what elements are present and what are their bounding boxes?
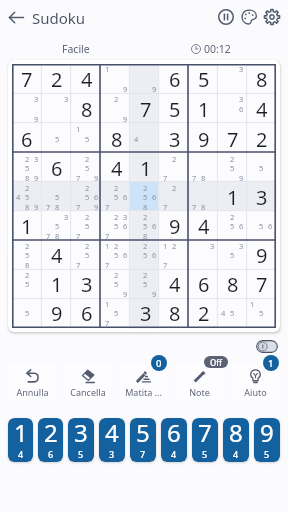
button[interactable]: 2	[72, 241, 102, 270]
button[interactable]: 7	[12, 64, 42, 94]
button[interactable]: 3	[189, 241, 218, 270]
button[interactable]: 2	[218, 154, 247, 183]
button[interactable]: 3	[12, 94, 42, 124]
button[interactable]: 7	[189, 154, 218, 183]
button[interactable]: Matita ...	[119, 362, 168, 401]
button[interactable]: 8	[72, 94, 102, 124]
button[interactable]: 5	[130, 418, 156, 462]
button[interactable]: 3	[218, 94, 247, 124]
button[interactable]: 9	[42, 299, 72, 328]
button[interactable]: 2	[12, 183, 42, 212]
button[interactable]: 1	[131, 154, 160, 183]
button[interactable]: 1	[218, 183, 247, 212]
button[interactable]: 3	[42, 94, 72, 124]
button[interactable]: 2	[102, 212, 131, 241]
button[interactable]: 8	[102, 124, 131, 154]
button[interactable]: 5	[247, 212, 276, 241]
button[interactable]: Settings	[260, 5, 284, 29]
button[interactable]: 5	[42, 124, 72, 154]
button[interactable]: 2	[189, 299, 218, 328]
button[interactable]: 9	[189, 124, 218, 154]
button[interactable]: 2	[131, 183, 160, 212]
button[interactable]: 6	[72, 299, 102, 328]
button[interactable]: 6	[160, 64, 189, 94]
button[interactable]: 8	[223, 418, 249, 462]
button[interactable]: 7	[247, 270, 276, 299]
button[interactable]: 2	[72, 212, 102, 241]
button[interactable]: 2	[160, 183, 189, 212]
button[interactable]: 4	[131, 124, 160, 154]
button[interactable]: Back	[4, 5, 28, 29]
button[interactable]: 3	[131, 299, 160, 328]
button[interactable]: 9	[247, 241, 276, 270]
button[interactable]: 1	[8, 418, 33, 462]
button[interactable]: 2	[102, 183, 131, 212]
button[interactable]: 4	[160, 270, 189, 299]
button[interactable]: Pause	[214, 5, 238, 29]
button[interactable]: Aiuto	[231, 362, 280, 401]
button[interactable]: 1	[102, 299, 131, 328]
button[interactable]: 7	[131, 94, 160, 124]
button[interactable]: 3	[218, 64, 247, 94]
button[interactable]: 3	[72, 270, 102, 299]
button[interactable]: 2	[12, 270, 42, 299]
button[interactable]: Theme	[237, 5, 261, 29]
button[interactable]: 1	[72, 124, 102, 154]
button[interactable]: 2	[160, 154, 189, 183]
button[interactable]: 3	[68, 418, 94, 462]
button[interactable]: 4	[102, 154, 131, 183]
button[interactable]: 4	[42, 241, 72, 270]
button[interactable]: 7	[192, 418, 218, 462]
button[interactable]: 1	[12, 212, 42, 241]
button[interactable]: 4	[72, 64, 102, 94]
button[interactable]: 2	[102, 94, 131, 124]
button[interactable]: 3	[247, 183, 276, 212]
button[interactable]: Note	[175, 362, 224, 401]
button[interactable]: 4	[218, 299, 247, 328]
button[interactable]: 9	[254, 418, 280, 462]
button[interactable]: 4	[189, 212, 218, 241]
button[interactable]: 1	[247, 299, 276, 328]
button[interactable]: 2	[12, 241, 42, 270]
button[interactable]: 4	[247, 94, 276, 124]
button[interactable]: 6	[42, 154, 72, 183]
button[interactable]: 2	[12, 154, 42, 183]
button[interactable]: 5	[189, 64, 218, 94]
button[interactable]: 5	[42, 183, 72, 212]
button[interactable]: Annulla	[8, 362, 56, 401]
button[interactable]: 6	[189, 270, 218, 299]
button[interactable]: Cancella	[63, 362, 112, 401]
button[interactable]: 9	[131, 64, 160, 94]
button[interactable]: 2	[72, 183, 102, 212]
button[interactable]: 6	[12, 124, 42, 154]
button[interactable]: 2	[247, 124, 276, 154]
button[interactable]: 2	[131, 270, 160, 299]
button[interactable]: 1	[42, 270, 72, 299]
button[interactable]: Toggle highlight	[256, 340, 278, 353]
button[interactable]: 2	[102, 270, 131, 299]
button[interactable]: 2	[42, 64, 72, 94]
button[interactable]: 5	[160, 94, 189, 124]
button[interactable]: 8	[247, 64, 276, 94]
button[interactable]: 2	[38, 418, 63, 462]
button[interactable]: 1	[102, 241, 131, 270]
button[interactable]: 1	[189, 94, 218, 124]
button[interactable]: 8	[218, 270, 247, 299]
button[interactable]: 4	[99, 418, 125, 462]
button[interactable]: 2	[72, 154, 102, 183]
button[interactable]: 9	[160, 212, 189, 241]
button[interactable]: 2	[218, 212, 247, 241]
button[interactable]: 3	[160, 124, 189, 154]
button[interactable]: 3	[42, 212, 72, 241]
button[interactable]: 5	[12, 299, 42, 328]
button[interactable]: 1	[160, 241, 189, 270]
button[interactable]: 5	[247, 154, 276, 183]
button[interactable]: 1	[102, 64, 131, 94]
button[interactable]: 2	[131, 212, 160, 241]
button[interactable]: 3	[218, 241, 247, 270]
button[interactable]: 7	[189, 183, 218, 212]
button[interactable]: 8	[160, 299, 189, 328]
button[interactable]: 7	[218, 124, 247, 154]
button[interactable]: 2	[131, 241, 160, 270]
button[interactable]: 6	[161, 418, 187, 462]
